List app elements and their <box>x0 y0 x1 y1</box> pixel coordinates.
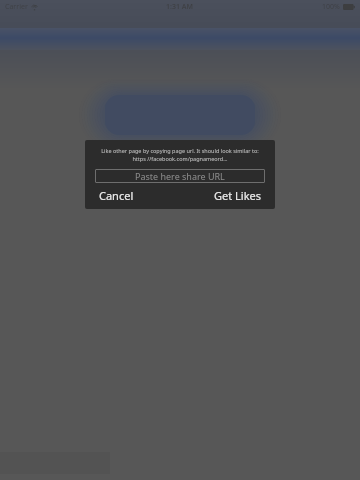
other: Wi-Fi signal <box>31 4 38 11</box>
staticText: Carrier <box>5 2 28 12</box>
staticText: Get Likes <box>214 188 261 203</box>
other: Battery full <box>343 4 355 10</box>
staticText: Paste here share URL <box>135 170 225 182</box>
staticText: Like other page by copying page url. It … <box>95 147 265 163</box>
staticText: Cancel <box>99 188 134 203</box>
staticText: 100% <box>322 2 340 12</box>
button[interactable]: Paste here share URL <box>95 169 265 183</box>
button[interactable]: Get Likes <box>210 186 265 205</box>
button[interactable]: Cancel <box>95 186 138 205</box>
staticText: 1:31 AM <box>166 2 193 12</box>
